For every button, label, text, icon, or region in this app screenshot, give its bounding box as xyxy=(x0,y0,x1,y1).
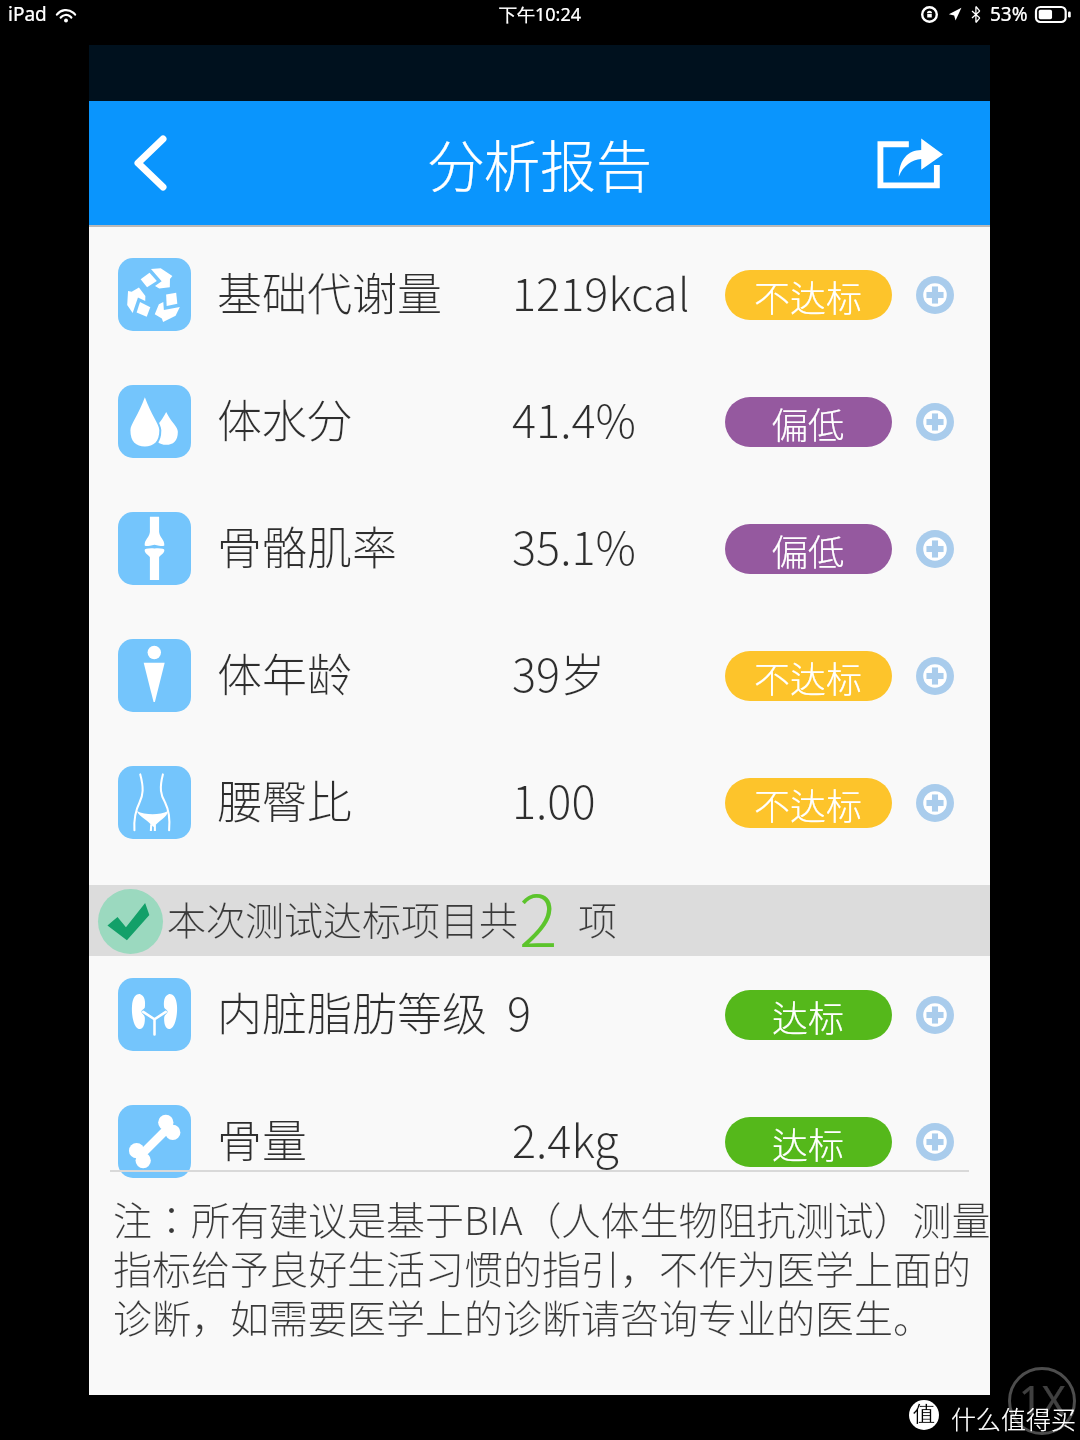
staticText: iPad xyxy=(8,1,47,27)
staticText: 2.4kg xyxy=(512,1106,619,1171)
button[interactable]: Details xyxy=(916,276,954,314)
staticText: 39岁 xyxy=(512,640,606,705)
button[interactable]: 基础代谢量 xyxy=(89,231,990,358)
button[interactable]: Details xyxy=(916,1123,954,1161)
staticText: 下午10:24 xyxy=(499,2,582,27)
staticText: 内脏脂肪等级 9 xyxy=(217,979,531,1044)
staticText: 偏低 xyxy=(772,524,845,574)
staticText: 骨骼肌率 xyxy=(217,513,398,578)
staticText: 41.4% xyxy=(512,386,636,451)
button[interactable]: 体水分 xyxy=(89,358,990,485)
button[interactable]: 体年龄 xyxy=(89,612,990,739)
button[interactable]: 腰臀比 xyxy=(89,739,990,866)
staticText: 分析报告 xyxy=(428,122,652,203)
staticText: 项 xyxy=(578,890,618,946)
staticText: 基础代谢量 xyxy=(217,259,443,324)
staticText: 什么值得买 xyxy=(951,1400,1077,1436)
button[interactable]: Details xyxy=(916,657,954,695)
staticText: 达标 xyxy=(772,1117,845,1167)
staticText: 偏低 xyxy=(772,397,845,447)
staticText: 不达标 xyxy=(754,778,863,828)
staticText: 体水分 xyxy=(217,386,353,451)
staticText: 53% xyxy=(990,1,1028,27)
staticText: 不达标 xyxy=(754,651,863,701)
staticText: 值 xyxy=(913,1400,935,1428)
button[interactable]: Details xyxy=(916,530,954,568)
staticText: 1219kcal xyxy=(512,259,690,324)
staticText: 1.00 xyxy=(512,767,596,832)
button[interactable]: Details xyxy=(916,784,954,822)
button[interactable]: Details xyxy=(916,403,954,441)
button[interactable]: 骨量 xyxy=(89,1078,990,1205)
staticText: 骨量 xyxy=(217,1106,308,1171)
button[interactable]: 骨骼肌率 xyxy=(89,485,990,612)
button[interactable]: Details xyxy=(916,996,954,1034)
staticText: 本次测试达标项目共 xyxy=(167,890,519,946)
staticText: 不达标 xyxy=(754,270,863,320)
staticText: 腰臀比 xyxy=(217,767,353,832)
staticText: 达标 xyxy=(772,990,845,1040)
staticText: 35.1% xyxy=(512,513,636,578)
staticText: 注：所有建议是基于BIA（人体生物阻抗测试）测量指标给予良好生活习惯的指引，不作… xyxy=(113,1190,993,1344)
staticText: 体年龄 xyxy=(217,640,353,705)
button[interactable]: Share xyxy=(870,101,990,225)
staticText: 2 xyxy=(519,863,558,967)
staticText: 1X xyxy=(1019,1372,1066,1426)
button[interactable]: Back xyxy=(89,101,209,225)
button[interactable]: 内脏脂肪等级 9 xyxy=(89,951,990,1078)
